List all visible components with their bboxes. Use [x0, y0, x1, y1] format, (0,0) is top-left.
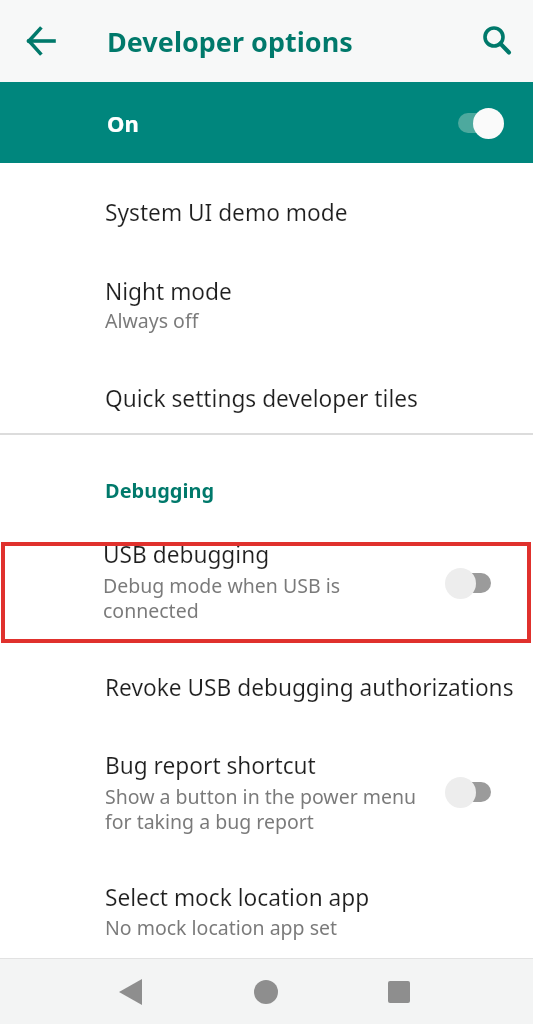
button[interactable] [0, 0, 82, 82]
staticText: Debugging [105, 477, 215, 504]
staticText: Night mode [105, 276, 232, 307]
button[interactable]: Night mode [0, 262, 533, 348]
button[interactable]: Revoke USB debugging authorizations [0, 660, 533, 715]
staticText: Quick settings developer tiles [105, 383, 418, 414]
staticText: connected [103, 597, 199, 624]
staticText: On [107, 108, 139, 138]
staticText: No mock location app set [105, 914, 338, 941]
staticText: Developer options [107, 23, 461, 60]
staticText: USB debugging [103, 539, 270, 570]
button[interactable] [359, 959, 439, 1024]
staticText: Show a button in the power menu [105, 783, 417, 810]
staticText: Revoke USB debugging authorizations [105, 672, 514, 703]
button[interactable]: System UI demo mode [0, 163, 533, 262]
staticText: Bug report shortcut [105, 750, 316, 781]
button[interactable]: On [0, 82, 533, 163]
staticText: for taking a bug report [105, 808, 314, 835]
button[interactable]: Bug report shortcut [0, 749, 533, 838]
staticText: Debug mode when USB is [103, 572, 341, 599]
button[interactable] [226, 959, 306, 1024]
staticText: System UI demo mode [105, 197, 348, 228]
button[interactable] [90, 959, 170, 1024]
staticText: Always off [105, 307, 199, 334]
button[interactable]: Quick settings developer tiles [0, 367, 533, 430]
button[interactable]: Select mock location app [0, 876, 533, 947]
staticText: Select mock location app [105, 882, 370, 913]
button[interactable]: USB debugging [1, 542, 531, 643]
button[interactable] [461, 0, 533, 82]
